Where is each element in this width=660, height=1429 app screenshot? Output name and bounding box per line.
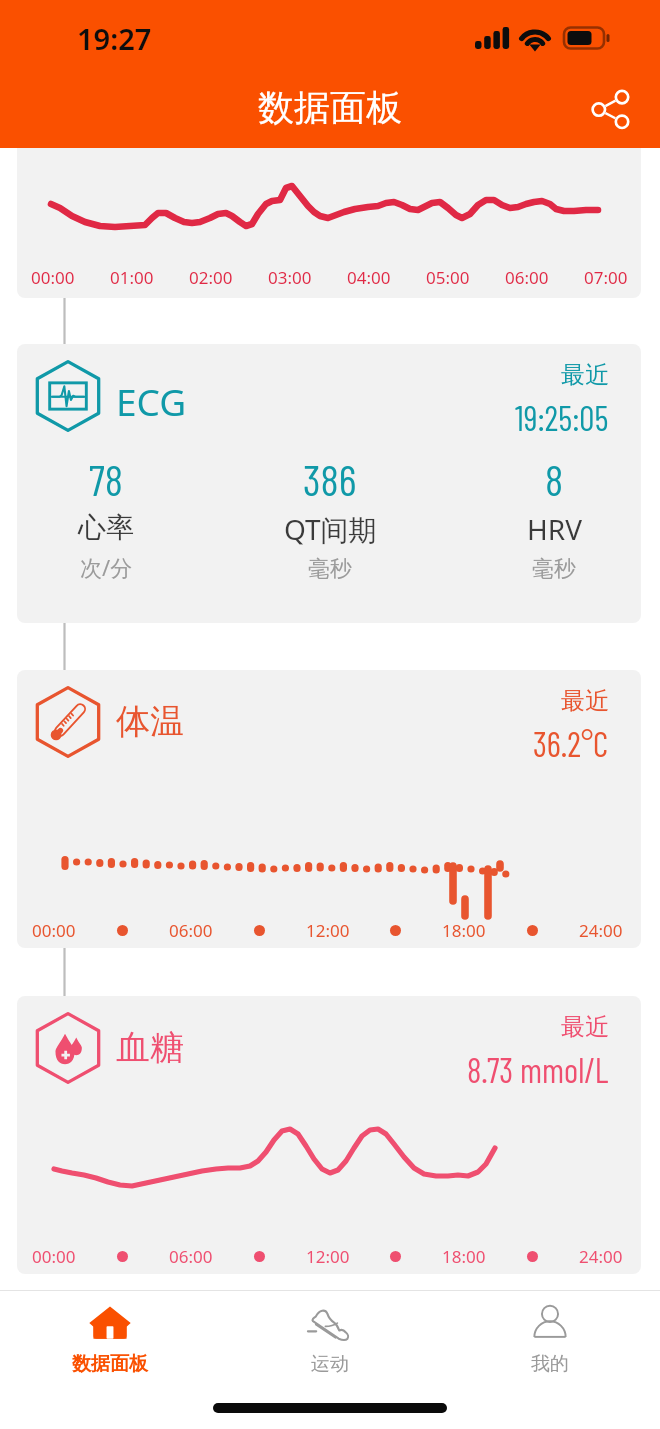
staticText: 06:00 xyxy=(169,1245,213,1268)
staticText: 24:00 xyxy=(579,919,623,942)
button[interactable]: 体温 xyxy=(17,670,641,948)
staticText: 心率 xyxy=(78,510,134,545)
button[interactable]: 血糖 xyxy=(17,996,641,1274)
staticText: 12:00 xyxy=(306,919,350,942)
staticText: 06:00 xyxy=(169,919,213,942)
staticText: 最近 xyxy=(561,360,609,390)
staticText: 最近 xyxy=(561,686,609,716)
staticText: 78 xyxy=(89,453,123,505)
staticText: QT间期 xyxy=(284,510,377,548)
staticText: 03:00 xyxy=(268,266,312,289)
staticText: 8.73 mmol/L xyxy=(467,1049,609,1090)
staticText: 毫秒 xyxy=(308,555,352,583)
staticText: 毫秒 xyxy=(532,555,576,583)
button[interactable]: 我的 xyxy=(440,1291,660,1386)
staticText: 05:00 xyxy=(426,266,470,289)
staticText: 06:00 xyxy=(505,266,549,289)
staticText: 19:27 xyxy=(77,19,152,58)
staticText: 00:00 xyxy=(32,919,76,942)
button[interactable]: 数据面板 xyxy=(0,1291,220,1386)
staticText: 01:00 xyxy=(110,266,154,289)
staticText: 00:00 xyxy=(32,1245,76,1268)
staticText: 8 xyxy=(545,453,564,505)
button[interactable]: ECG xyxy=(17,344,641,623)
staticText: 体温 xyxy=(116,700,184,743)
staticText: 血糖 xyxy=(116,1026,184,1069)
staticText: 19:25:05 xyxy=(515,397,609,438)
staticText: 18:00 xyxy=(442,1245,486,1268)
staticText: 数据面板 xyxy=(258,85,402,130)
staticText: 数据面板 xyxy=(72,1352,148,1376)
staticText: HRV xyxy=(527,510,582,548)
staticText: 12:00 xyxy=(306,1245,350,1268)
staticText: 我的 xyxy=(531,1352,569,1376)
staticText: 386 xyxy=(303,453,357,505)
staticText: 次/分 xyxy=(80,552,133,582)
button[interactable]: 00:00 xyxy=(17,148,641,298)
staticText: ECG xyxy=(116,376,187,426)
staticText: 07:00 xyxy=(584,266,628,289)
staticText: 18:00 xyxy=(442,919,486,942)
staticText: 运动 xyxy=(311,1352,349,1376)
staticText: 24:00 xyxy=(579,1245,623,1268)
staticText: 00:00 xyxy=(31,266,75,289)
button[interactable]: 运动 xyxy=(220,1291,440,1386)
staticText: 02:00 xyxy=(189,266,233,289)
staticText: 04:00 xyxy=(347,266,391,289)
staticText: 36.2°C xyxy=(533,723,609,764)
staticText: 最近 xyxy=(561,1012,609,1042)
button[interactable]: Share xyxy=(582,80,640,138)
